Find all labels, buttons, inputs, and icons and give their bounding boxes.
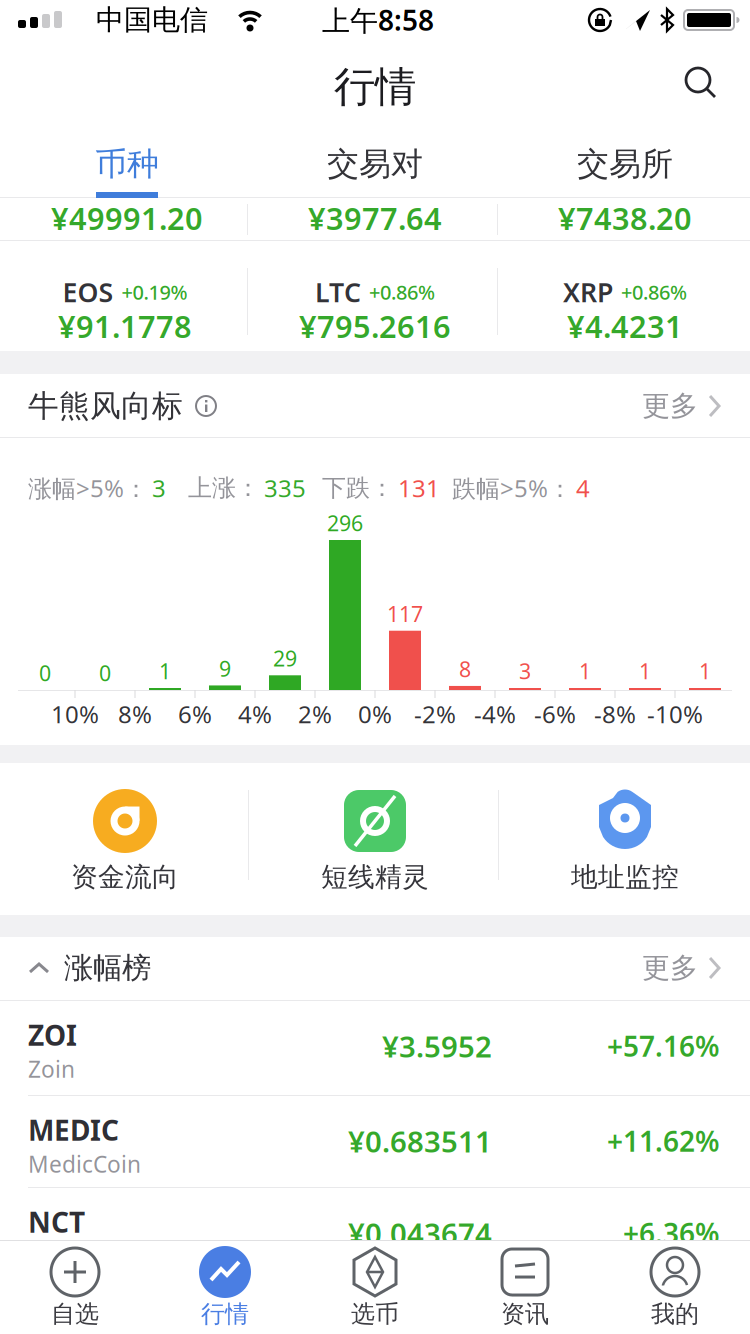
staticText: 更多 (642, 389, 698, 423)
button[interactable]: 资金流向 (10, 762, 240, 912)
staticText: Nectar (28, 1241, 99, 1271)
staticText: 下跌： (322, 473, 394, 503)
button[interactable]: 交易对 (285, 134, 465, 194)
staticText: 6% (178, 698, 212, 730)
staticText: Zoin (28, 1054, 75, 1084)
staticText: 0 (39, 659, 51, 687)
staticText: 1 (159, 657, 171, 685)
button[interactable]: 行情 (155, 1240, 295, 1332)
staticText: 币种 (95, 144, 159, 184)
staticText: 更多 (642, 951, 698, 985)
staticText: +0.86% (621, 279, 687, 305)
button[interactable]: 更多 (642, 389, 722, 423)
staticText: 8% (118, 698, 152, 730)
staticText: ¥91.1778 (58, 306, 192, 346)
staticText: 地址监控 (571, 861, 679, 893)
button[interactable]: ¥3977.64 (260, 197, 490, 239)
button[interactable]: 币种 (47, 134, 207, 194)
staticText: 10% (51, 698, 99, 730)
staticText: 1 (579, 657, 591, 685)
staticText: ZOI (28, 1016, 77, 1054)
staticText: 9 (219, 654, 231, 683)
button[interactable]: XRP (505, 241, 745, 351)
button[interactable]: ¥49991.20 (12, 197, 242, 239)
staticText: 资金流向 (71, 861, 179, 893)
button[interactable]: NCT (0, 1188, 750, 1280)
staticText: 牛熊风向标 (28, 387, 183, 425)
staticText: 交易对 (327, 144, 423, 184)
button[interactable]: ZOI (0, 1001, 750, 1093)
staticText: 117 (387, 599, 423, 628)
button[interactable]: 短线精灵 (260, 762, 490, 912)
staticText: +6.36% (623, 1214, 720, 1252)
staticText: 0% (358, 698, 392, 730)
staticText: ¥795.2616 (299, 306, 451, 346)
staticText: 行情 (201, 1299, 249, 1329)
staticText: 选币 (351, 1299, 399, 1329)
staticText: 行情 (334, 62, 416, 112)
staticText: MedicCoin (28, 1149, 141, 1179)
staticText: ¥0.683511 (348, 1121, 492, 1160)
staticText: EOS (62, 274, 113, 310)
button[interactable]: 资讯 (455, 1240, 595, 1332)
staticText: LTC (315, 274, 361, 310)
staticText: 131 (398, 472, 440, 504)
staticText: 上午8:58 (322, 1, 434, 39)
staticText: 涨幅榜 (64, 950, 151, 986)
staticText: 短线精灵 (321, 861, 429, 893)
staticText: 涨幅>5%： (28, 472, 148, 504)
staticText: 自选 (51, 1299, 99, 1329)
button[interactable]: EOS (5, 241, 245, 351)
staticText: +0.19% (121, 279, 187, 305)
button[interactable]: 交易所 (535, 134, 715, 194)
staticText: -6% (534, 698, 576, 730)
button[interactable]: ¥7438.20 (510, 197, 740, 239)
button[interactable]: LTC (255, 241, 495, 351)
staticText: 4 (576, 472, 590, 504)
staticText: ¥4.4231 (567, 306, 683, 346)
staticText: +11.62% (607, 1122, 720, 1160)
staticText: -10% (647, 698, 703, 730)
staticText: 上涨： (188, 473, 260, 503)
staticText: -2% (414, 698, 456, 730)
button[interactable]: 选币 (305, 1240, 445, 1332)
staticText: 8 (459, 655, 471, 683)
staticText: MEDIC (28, 1111, 119, 1149)
staticText: 1 (639, 657, 651, 685)
staticText: 296 (327, 509, 363, 537)
staticText: 29 (273, 644, 297, 672)
staticText: 资讯 (501, 1299, 549, 1329)
staticText: ¥49991.20 (51, 198, 203, 238)
button[interactable]: Info (195, 395, 217, 417)
staticText: 335 (264, 472, 306, 504)
staticText: -4% (474, 698, 516, 730)
staticText: 交易所 (577, 144, 673, 184)
staticText: ¥7438.20 (558, 198, 692, 238)
button[interactable]: 自选 (5, 1240, 145, 1332)
staticText: ¥3977.64 (308, 198, 442, 238)
staticText: 2% (298, 698, 332, 730)
staticText: XRP (563, 274, 613, 310)
staticText: 跌幅>5%： (452, 472, 572, 504)
button[interactable]: 我的 (605, 1240, 745, 1332)
staticText: NCT (28, 1203, 85, 1241)
button[interactable]: 更多 (642, 951, 722, 985)
staticText: 3 (152, 472, 166, 504)
staticText: 我的 (651, 1299, 699, 1329)
button[interactable]: MEDIC (0, 1096, 750, 1188)
staticText: 中国电信 (96, 3, 208, 37)
staticText: +0.86% (369, 279, 435, 305)
staticText: ¥0.043674 (348, 1213, 492, 1252)
staticText: -8% (594, 698, 636, 730)
staticText: ¥3.5952 (382, 1026, 492, 1065)
staticText: 4% (238, 698, 272, 730)
staticText: 1 (699, 657, 711, 685)
staticText: 0 (99, 659, 111, 687)
button[interactable]: 地址监控 (510, 762, 740, 912)
button[interactable]: Search (685, 68, 719, 102)
button[interactable]: Collapse (28, 950, 151, 986)
staticText: +57.16% (607, 1027, 720, 1065)
staticText: 3 (519, 657, 531, 685)
